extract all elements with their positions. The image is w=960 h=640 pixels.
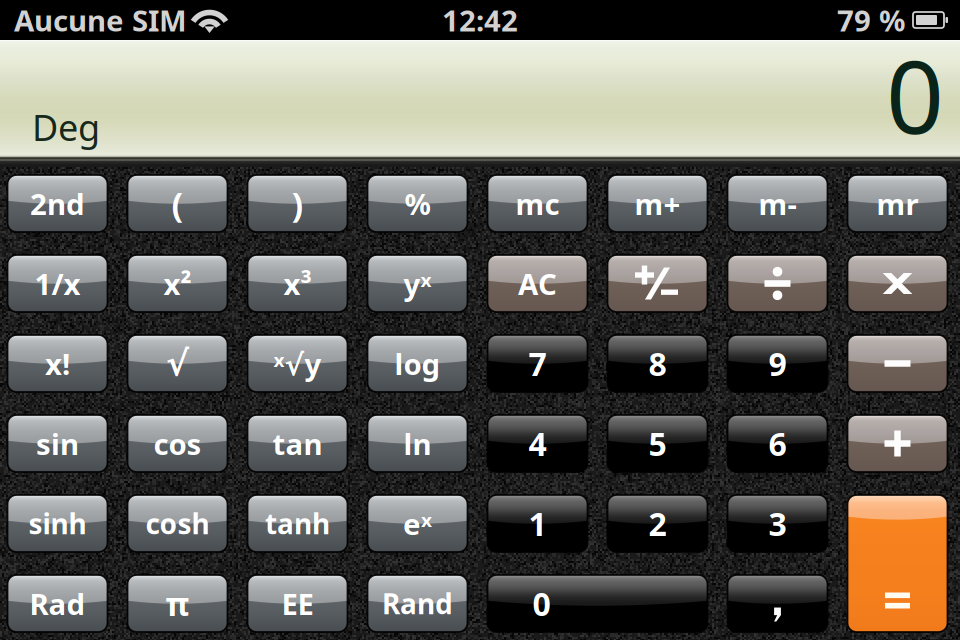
staticText: 5 [648,422,666,465]
staticText: Rad [29,584,85,623]
staticText: 0 [886,27,944,162]
button[interactable]: 1 [487,495,587,552]
button[interactable]: ) [247,175,347,232]
staticText: 79 % [837,0,905,39]
staticText: Aucune SIM [14,0,187,39]
staticText: log [394,344,440,383]
button[interactable]: cos [127,415,227,472]
staticText: 6 [768,422,786,465]
button[interactable]: 6 [727,415,827,472]
button[interactable]: m- [727,175,827,232]
button[interactable]: 8 [607,335,707,392]
staticText: 1/x [34,264,80,303]
button[interactable]: Equals [847,495,947,632]
button[interactable]: √ [127,335,227,392]
staticText: 9 [768,342,786,385]
button[interactable]: π [127,575,227,632]
button[interactable]: x² [127,255,227,312]
button[interactable]: tan [247,415,347,472]
button[interactable]: sinh [7,495,107,552]
staticText: EE [281,584,313,623]
button[interactable]: 9 [727,335,827,392]
staticText: x³ [283,264,311,303]
staticText: 0 [532,582,550,625]
staticText: % [404,184,430,223]
staticText: AC [518,264,557,303]
staticText: eˣ [403,504,432,543]
staticText: 2nd [30,184,85,223]
button[interactable]: All clear [487,255,587,312]
button[interactable]: 2nd [7,175,107,232]
staticText: tanh [265,505,330,542]
button[interactable]: mc [487,175,587,232]
button[interactable]: 2 [607,495,707,552]
staticText: 12:42 [442,0,518,39]
staticText: x! [45,344,70,383]
button[interactable]: tanh [247,495,347,552]
button[interactable]: x! [7,335,107,392]
button[interactable]: ( [127,175,227,232]
button[interactable]: Divide [727,255,827,312]
button[interactable]: mr [847,175,947,232]
staticText: 4 [528,422,546,465]
staticText: yˣ [403,264,431,303]
button[interactable]: EE [247,575,347,632]
staticText: Rand [382,585,453,622]
button[interactable]: 1/x [7,255,107,312]
button[interactable]: 3 [727,495,827,552]
button[interactable]: sin [7,415,107,472]
button[interactable]: m+ [607,175,707,232]
button[interactable]: Rand [367,575,467,632]
button[interactable]: ˣ√y [247,335,347,392]
button[interactable]: Plus minus [607,255,707,312]
button[interactable]: yˣ [367,255,467,312]
button[interactable]: Decimal point [727,575,827,632]
staticText: ln [403,424,431,463]
staticText: √ [166,344,189,383]
button[interactable]: x³ [247,255,347,312]
staticText: Deg [32,103,100,151]
staticText: x² [163,264,191,303]
button[interactable]: cosh [127,495,227,552]
staticText: cosh [145,505,209,542]
button[interactable]: Plus [847,415,947,472]
staticText: ( [171,180,183,226]
button[interactable]: 5 [607,415,707,472]
staticText: 8 [648,342,666,385]
staticText: cos [153,424,201,463]
staticText: 1 [528,502,546,545]
button[interactable]: log [367,335,467,392]
staticText: 2 [648,502,666,545]
button[interactable]: ln [367,415,467,472]
button[interactable]: 0 [487,575,707,632]
staticText: ˣ√y [273,344,321,383]
button[interactable]: 7 [487,335,587,392]
staticText: sin [36,424,79,463]
staticText: 7 [528,342,546,385]
staticText: tan [272,424,322,463]
staticText: 3 [768,502,786,545]
staticText: mr [876,184,918,223]
staticText: mc [515,184,559,223]
staticText: sinh [28,505,86,542]
staticText: ) [291,180,303,226]
button[interactable]: Rad [7,575,107,632]
staticText: m+ [634,184,680,223]
staticText: π [165,582,189,625]
button[interactable]: 4 [487,415,587,472]
button[interactable]: Minus [847,335,947,392]
button[interactable]: % [367,175,467,232]
button[interactable]: eˣ [367,495,467,552]
button[interactable]: Multiply [847,255,947,312]
staticText: m- [758,184,796,223]
